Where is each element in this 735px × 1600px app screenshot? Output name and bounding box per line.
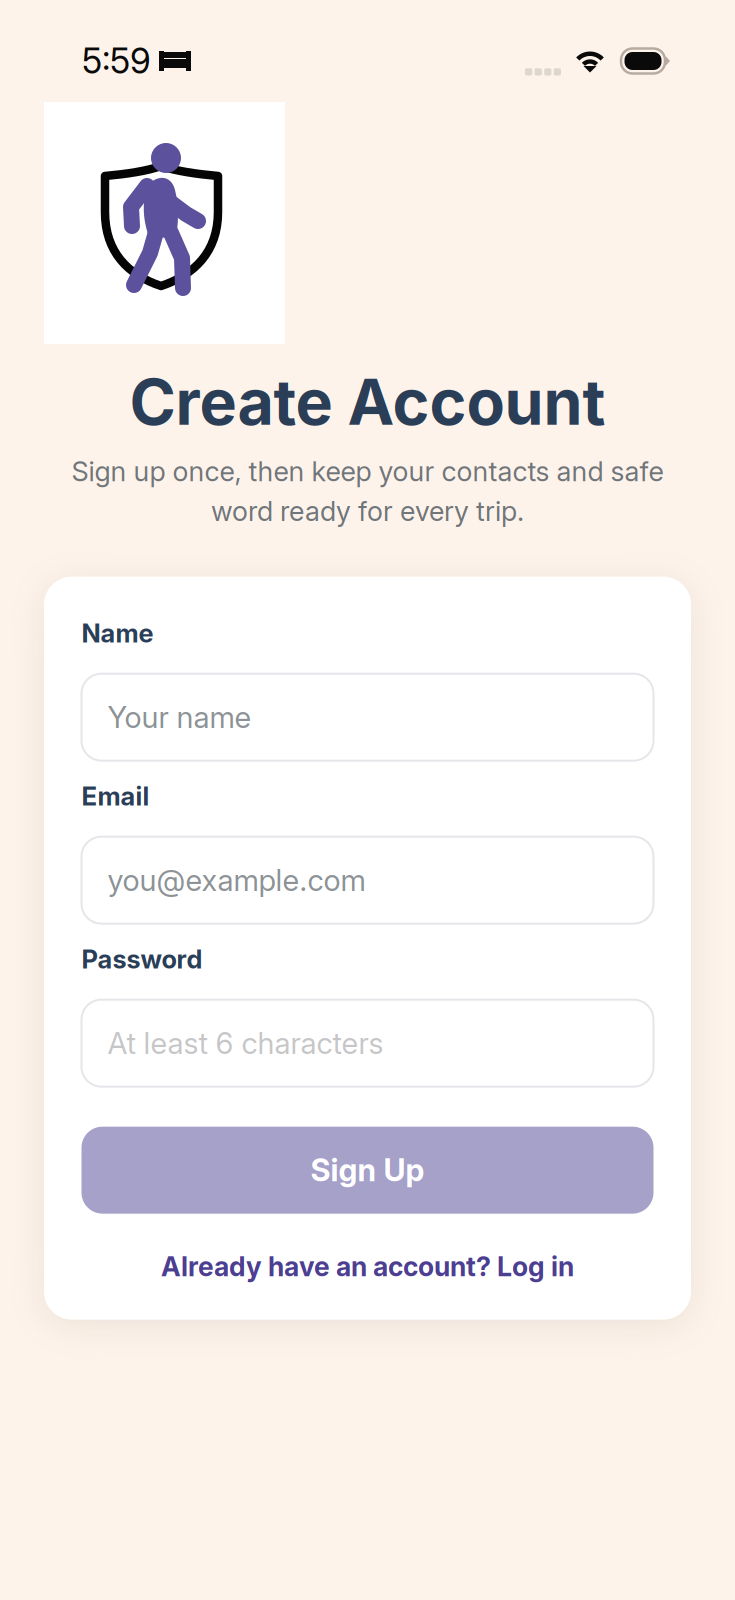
staticText: you@example.com (107, 862, 365, 898)
staticText: Create Account (129, 364, 605, 440)
staticText: Name (81, 618, 153, 649)
staticText: Sign up once, then keep your contacts an… (71, 455, 663, 488)
staticText: word ready for every trip. (211, 495, 524, 528)
button[interactable]: Your name (81, 674, 653, 761)
button[interactable]: At least 6 characters (81, 1000, 653, 1087)
staticText: Password (81, 944, 202, 975)
staticText: At least 6 characters (107, 1025, 383, 1061)
staticText: 5:59 (82, 40, 151, 82)
staticText: Already have an account? Log in (161, 1250, 574, 1283)
button[interactable]: Sign Up (81, 1127, 653, 1214)
button[interactable]: Already have an account? Log in (81, 1249, 653, 1285)
staticText: Your name (107, 699, 251, 735)
staticText: Email (81, 781, 149, 812)
button[interactable]: you@example.com (81, 837, 653, 924)
staticText: Sign Up (310, 1152, 424, 1189)
